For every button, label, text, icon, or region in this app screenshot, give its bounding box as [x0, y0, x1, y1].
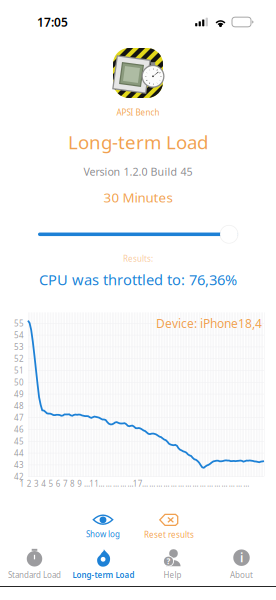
- staticText: 7: [63, 478, 68, 489]
- staticText: 55: [14, 318, 24, 329]
- staticText: ...: [207, 478, 213, 489]
- staticText: ...: [171, 478, 177, 489]
- staticText: Long-term Load: [72, 570, 134, 580]
- staticText: 2: [27, 478, 32, 489]
- staticText: CPU was throttled to: 76,36%: [39, 270, 237, 289]
- button[interactable]: Long-term Load: [69, 544, 138, 588]
- staticText: ...: [84, 478, 90, 489]
- staticText: 17: [133, 478, 143, 489]
- staticText: Device: iPhone18,4: [156, 315, 262, 331]
- staticText: Reset results: [144, 529, 194, 540]
- staticText: 50: [14, 377, 24, 388]
- staticText: ...: [185, 478, 191, 489]
- staticText: ...: [192, 478, 198, 489]
- staticText: ...: [221, 478, 227, 489]
- button[interactable]: Standard Load: [0, 544, 69, 588]
- staticText: 44: [14, 448, 24, 458]
- button[interactable]: ?: [138, 544, 207, 588]
- staticText: 48: [14, 401, 24, 411]
- staticText: ...: [236, 478, 242, 489]
- staticText: i: [240, 550, 243, 566]
- staticText: 51: [14, 365, 24, 376]
- staticText: 9: [77, 478, 82, 489]
- staticText: ...: [178, 478, 184, 489]
- staticText: 5: [48, 478, 53, 489]
- staticText: 8: [70, 478, 75, 489]
- button[interactable]: Reset results: [134, 513, 204, 540]
- staticText: 43: [14, 460, 24, 470]
- staticText: 1: [19, 478, 24, 489]
- staticText: ...: [142, 478, 148, 489]
- staticText: ...: [156, 478, 162, 489]
- staticText: 4: [41, 478, 46, 489]
- staticText: Help: [163, 570, 181, 580]
- staticText: ...: [149, 478, 155, 489]
- staticText: ...: [98, 478, 104, 489]
- staticText: ...: [164, 478, 170, 489]
- button[interactable]: Show log: [72, 514, 134, 539]
- staticText: Results:: [123, 253, 153, 264]
- staticText: ...: [113, 478, 119, 489]
- staticText: 3: [34, 478, 39, 489]
- staticText: ?: [166, 556, 170, 566]
- staticText: Show log: [86, 529, 120, 539]
- staticText: ...: [229, 478, 235, 489]
- staticText: APSI Bench: [116, 107, 159, 118]
- staticText: 11: [89, 478, 99, 489]
- staticText: ...: [243, 478, 249, 489]
- staticText: 42: [14, 471, 24, 482]
- staticText: 52: [14, 353, 24, 364]
- staticText: Long-term Load: [68, 130, 208, 154]
- staticText: 6: [56, 478, 61, 489]
- staticText: 47: [14, 412, 24, 423]
- staticText: 49: [14, 389, 24, 399]
- staticText: Standard Load: [8, 570, 61, 580]
- staticText: ...: [120, 478, 126, 489]
- staticText: 54: [14, 330, 24, 340]
- staticText: 45: [14, 436, 24, 447]
- staticText: 17:05: [37, 14, 68, 30]
- staticText: ...: [200, 478, 206, 489]
- staticText: ...: [106, 478, 112, 489]
- button[interactable]: i: [207, 544, 276, 588]
- staticText: 53: [14, 342, 24, 352]
- staticText: ...: [127, 478, 133, 489]
- staticText: Version 1.2.0 Build 45: [83, 164, 192, 179]
- staticText: 46: [14, 424, 24, 435]
- staticText: ...: [214, 478, 220, 489]
- staticText: 30 Minutes: [103, 189, 172, 206]
- staticText: About: [230, 570, 253, 580]
